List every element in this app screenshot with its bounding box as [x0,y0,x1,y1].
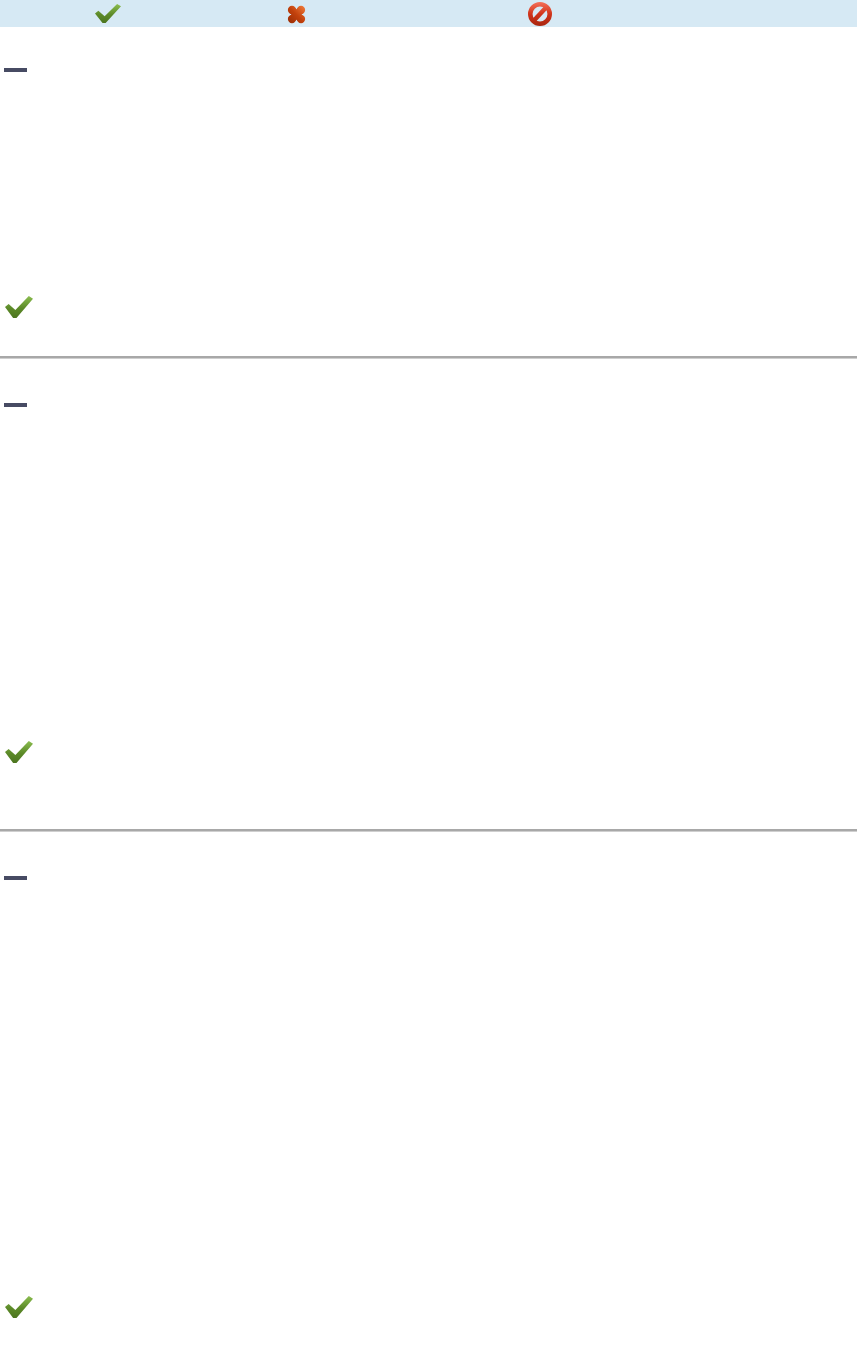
button[interactable]: Not allowed [285,3,308,26]
button[interactable]: Correct [4,294,34,320]
button[interactable]: Allowed [94,3,122,24]
button[interactable]: Correct [4,739,34,765]
button[interactable]: Prohibited [528,2,552,26]
button[interactable]: Correct [4,1294,34,1320]
